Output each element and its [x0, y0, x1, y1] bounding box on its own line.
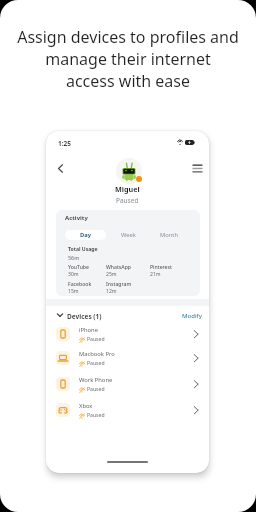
staticText: YouTube [68, 264, 89, 271]
staticText: iPhone [79, 326, 98, 334]
staticText: Instagram [106, 281, 132, 288]
staticText: Paused [116, 196, 139, 205]
staticText: 15m [68, 288, 79, 295]
button[interactable]: Back [52, 160, 68, 176]
staticText: WhatsApp [106, 264, 131, 271]
button[interactable]: Day [65, 230, 106, 240]
button[interactable]: Month [156, 230, 182, 240]
staticText: Miguel [115, 184, 140, 194]
staticText: Activity [65, 214, 88, 222]
staticText: 21m [150, 271, 161, 278]
staticText: Total Usage [68, 246, 98, 253]
button[interactable]: Macbook Pro [56, 351, 204, 373]
staticText: 1:25 [58, 139, 71, 148]
staticText: Paused [87, 360, 105, 367]
button[interactable]: iPhone [56, 327, 204, 349]
button[interactable]: Xbox [56, 403, 204, 425]
staticText: 12m [106, 288, 117, 295]
staticText: Week [121, 231, 136, 239]
staticText: Work Phone [79, 376, 113, 384]
staticText: Modify [182, 312, 202, 320]
staticText: 30m [68, 271, 79, 278]
staticText: Devices (1) [67, 312, 102, 321]
staticText: 25m [106, 271, 117, 278]
staticText: Paused [87, 386, 105, 393]
staticText: Assign devices to profiles and manage th… [0, 26, 256, 92]
staticText: Day [80, 231, 92, 239]
button[interactable]: Modify [182, 312, 202, 320]
staticText: Facebook [68, 281, 92, 288]
staticText: Macbook Pro [79, 350, 115, 358]
button[interactable]: Menu [189, 160, 205, 176]
button[interactable]: Week [115, 230, 141, 240]
staticText: Paused [87, 412, 105, 419]
staticText: 56m [68, 254, 80, 261]
staticText: Xbox [79, 402, 93, 410]
staticText: Pinterest [150, 264, 172, 271]
staticText: Paused [87, 336, 105, 343]
button[interactable]: Work Phone [56, 377, 204, 399]
staticText: Month [160, 231, 179, 239]
